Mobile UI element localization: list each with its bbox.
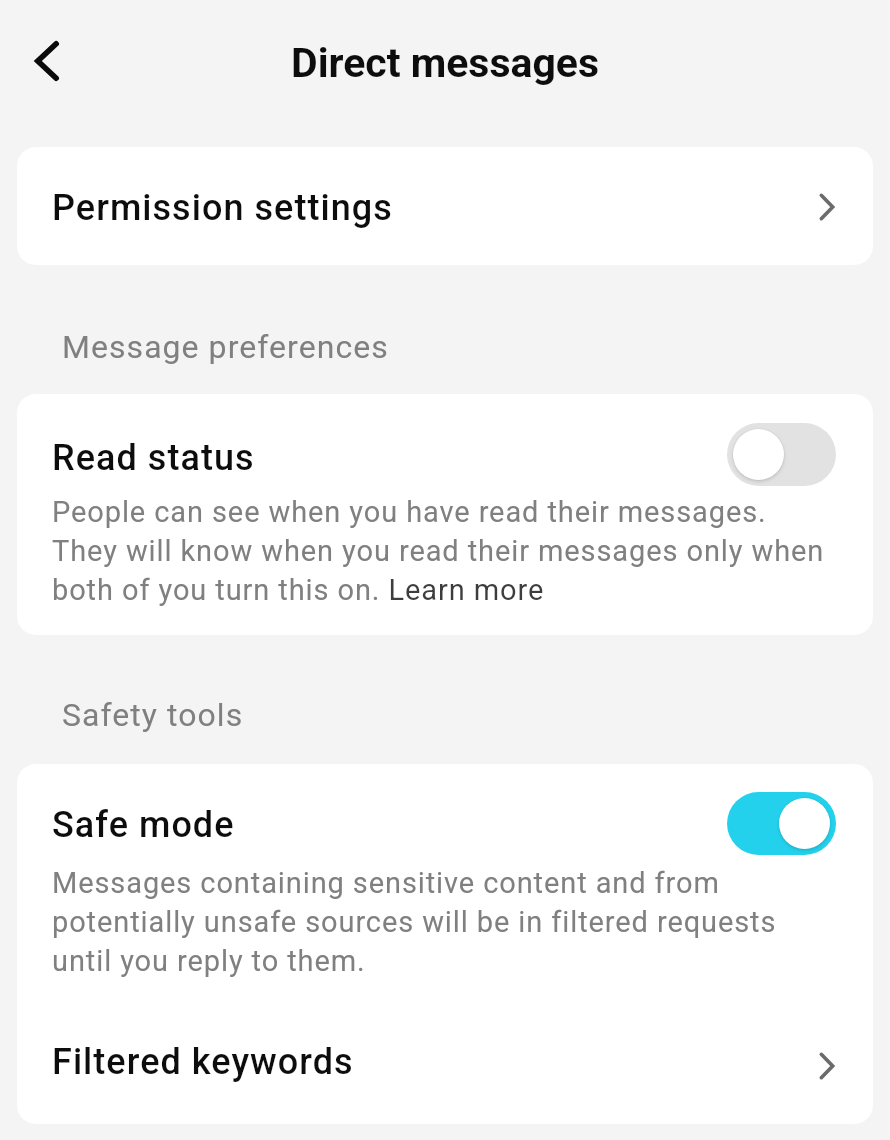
- staticText: Safe mode: [52, 804, 235, 846]
- staticText: Messages containing sensitive content an…: [52, 866, 830, 978]
- staticText: People can see when you have read their …: [52, 495, 830, 607]
- button[interactable]: Safe mode, on: [727, 792, 836, 855]
- staticText: Filtered keywords: [52, 1041, 354, 1083]
- button[interactable]: Read status, off: [727, 423, 836, 486]
- staticText: Permission settings: [52, 187, 393, 229]
- button[interactable]: Permission settings: [17, 147, 873, 265]
- staticText: Direct messages: [291, 39, 600, 87]
- staticText: Read status: [52, 437, 255, 479]
- button[interactable]: Filtered keywords: [17, 1004, 873, 1119]
- staticText: Safety tools: [62, 696, 244, 734]
- button[interactable]: Back: [13, 27, 81, 95]
- staticText: Message preferences: [62, 328, 389, 366]
